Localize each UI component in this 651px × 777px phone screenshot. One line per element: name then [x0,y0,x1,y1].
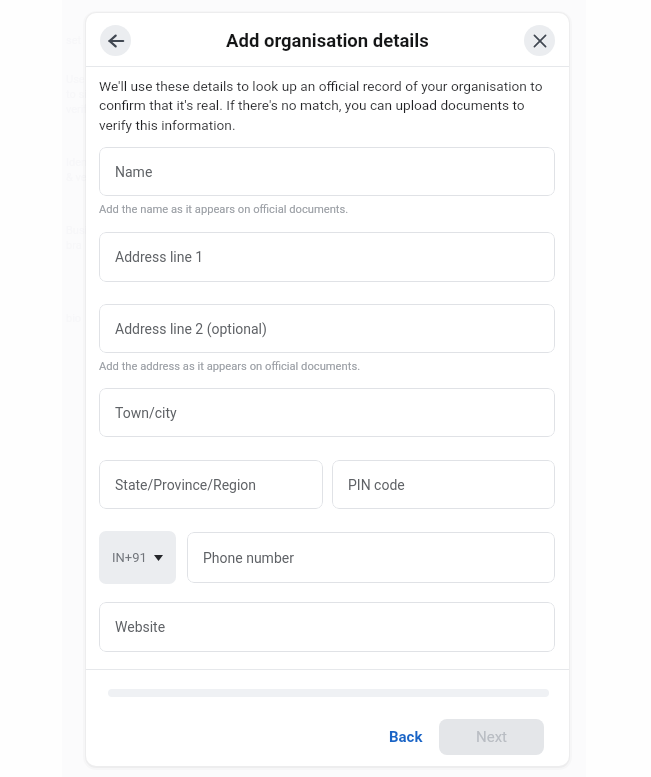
staticText: Town/city [115,405,177,421]
staticText: Phone number [203,550,294,566]
button[interactable]: Address line 2 (optional) [99,304,555,353]
button[interactable]: Close [524,25,555,56]
staticText: Iden & ve [66,156,88,184]
button[interactable]: Address line 1 [99,232,555,282]
staticText: PIN code [348,477,405,493]
staticText: Next [476,728,508,746]
button[interactable]: Back [377,719,435,754]
staticText: Address line 1 [115,249,204,265]
staticText: State/Province/Region [115,477,257,493]
staticText: Add the address as it appears on officia… [99,360,361,373]
staticText: Add organisation details [226,30,429,52]
button[interactable]: Website [99,602,555,652]
staticText: Address line 2 (optional) [115,321,267,337]
staticText: Add the name as it appears on official d… [99,203,349,216]
button[interactable]: Country code IN+91 [99,531,176,584]
staticText: We'll use these details to look up an of… [99,78,547,134]
button[interactable]: Back [100,25,131,56]
staticText: Name [115,164,153,180]
staticText: Back [389,728,423,746]
button[interactable]: Name [99,147,555,196]
button[interactable]: Town/city [99,388,555,437]
staticText: IN+91 [112,550,147,565]
button[interactable]: Next [439,719,544,755]
button[interactable]: PIN code [332,460,555,509]
staticText: Use to si verif [66,73,88,116]
button[interactable]: Phone number [187,532,555,583]
button[interactable]: State/Province/Region [99,460,323,509]
staticText: Busi bra [66,224,88,252]
staticText: Website [115,619,166,635]
